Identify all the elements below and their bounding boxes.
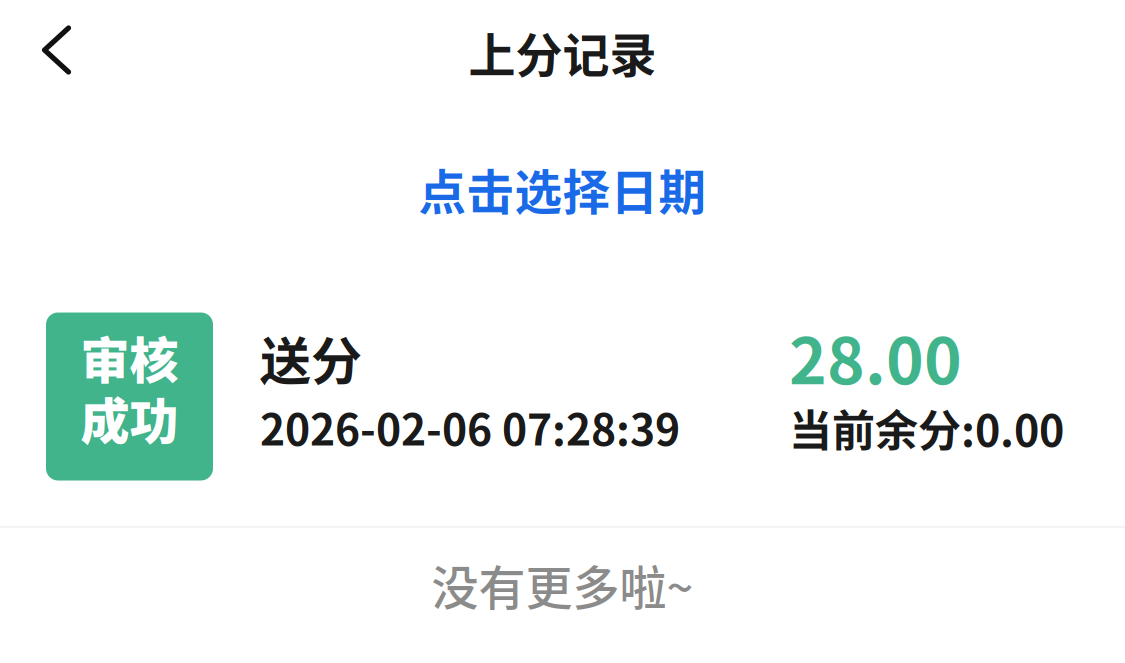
button[interactable]: 点击选择日期 (0, 104, 1125, 274)
staticText: 当前余分:0.00 (789, 397, 1064, 459)
staticText: 审核 (80, 321, 178, 392)
button[interactable]: 审核 (0, 274, 1125, 526)
staticText: 28.00 (789, 310, 962, 403)
button[interactable]: Back (0, 0, 113, 104)
staticText: 成功 (80, 382, 178, 453)
staticText: 点击选择日期 (418, 155, 706, 223)
staticText: 上分记录 (468, 18, 656, 86)
staticText: 送分 (260, 321, 362, 395)
staticText: 2026-02-06 07:28:39 (260, 396, 680, 458)
staticText: 没有更多啦~ (431, 550, 693, 619)
